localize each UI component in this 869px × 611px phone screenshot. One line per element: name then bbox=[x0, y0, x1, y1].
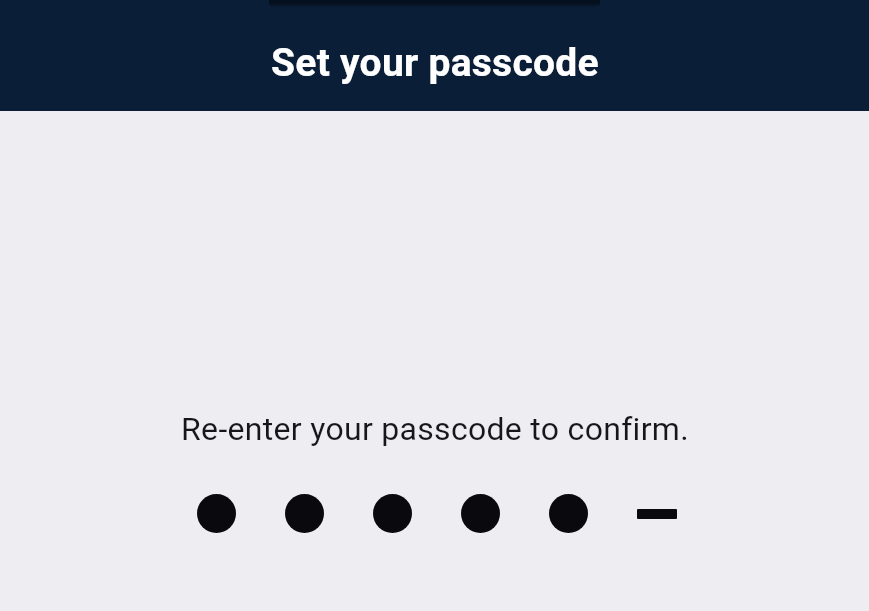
button[interactable]: Passcode entry bbox=[197, 494, 676, 533]
staticText: Set your passcode bbox=[271, 40, 599, 86]
staticText: Re-enter your passcode to confirm. bbox=[181, 410, 689, 448]
